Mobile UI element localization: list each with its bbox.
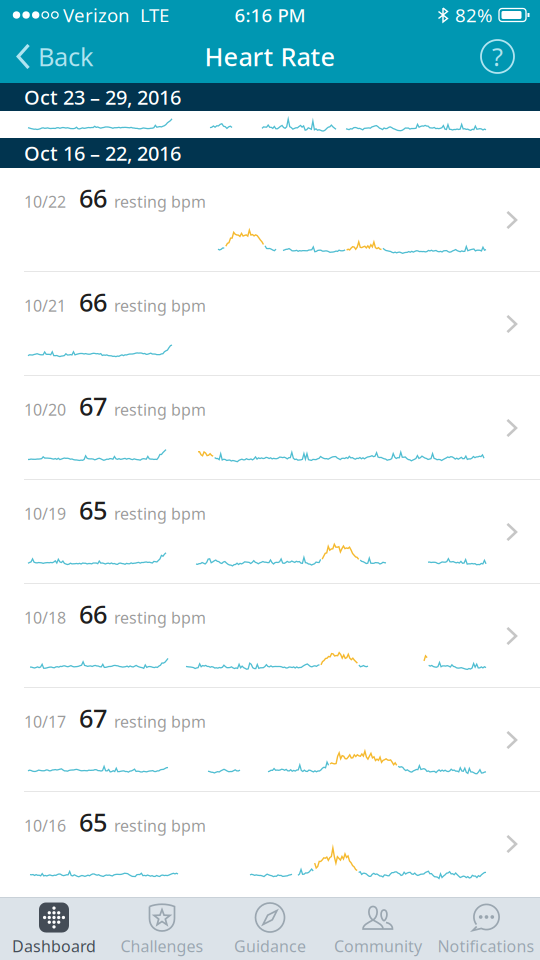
button[interactable]: 10/16 bbox=[0, 792, 540, 896]
staticText: 67 bbox=[79, 701, 107, 735]
staticText: Community bbox=[334, 935, 422, 957]
staticText: Oct 23 – 29, 2016 bbox=[24, 84, 181, 110]
staticText: resting bpm bbox=[114, 399, 206, 420]
staticText: resting bpm bbox=[114, 711, 206, 732]
staticText: 6:16 PM bbox=[234, 3, 305, 27]
button[interactable]: 10/18 bbox=[0, 584, 540, 688]
button[interactable]: 10/17 bbox=[0, 688, 540, 792]
staticText: 82% bbox=[455, 3, 493, 27]
button[interactable]: Back bbox=[0, 30, 104, 83]
staticText: 67 bbox=[79, 389, 107, 423]
button[interactable]: Guidance bbox=[216, 898, 324, 960]
staticText: resting bpm bbox=[114, 815, 206, 836]
staticText: resting bpm bbox=[114, 191, 206, 212]
button[interactable]: 10/19 bbox=[0, 480, 540, 584]
staticText: 65 bbox=[79, 493, 107, 527]
staticText: Oct 16 – 22, 2016 bbox=[24, 140, 181, 166]
staticText: Guidance bbox=[234, 935, 306, 957]
staticText: resting bpm bbox=[114, 503, 206, 524]
staticText: 65 bbox=[79, 805, 107, 839]
staticText: Verizon bbox=[63, 3, 130, 27]
button[interactable]: Dashboard bbox=[0, 898, 108, 960]
button[interactable]: Help bbox=[471, 30, 540, 83]
staticText: 66 bbox=[79, 597, 107, 631]
staticText: 10/22 bbox=[24, 191, 66, 212]
staticText: Notifications bbox=[437, 935, 534, 957]
staticText: 10/17 bbox=[24, 711, 66, 732]
button[interactable]: 10/20 bbox=[0, 376, 540, 480]
staticText: 10/16 bbox=[24, 815, 66, 836]
staticText: 66 bbox=[79, 285, 107, 319]
staticText: 10/20 bbox=[24, 399, 66, 420]
staticText: Heart Rate bbox=[204, 40, 335, 73]
staticText: Dashboard bbox=[12, 935, 96, 957]
staticText: resting bpm bbox=[114, 607, 206, 628]
staticText: 66 bbox=[79, 181, 107, 215]
staticText: LTE bbox=[140, 3, 169, 27]
staticText: Challenges bbox=[120, 935, 203, 957]
staticText: 10/21 bbox=[24, 295, 66, 316]
button[interactable]: 10/21 bbox=[0, 272, 540, 376]
button[interactable]: 10/22 bbox=[0, 168, 540, 272]
button[interactable]: Notifications bbox=[432, 898, 540, 960]
button[interactable]: Community bbox=[324, 898, 432, 960]
staticText: ? bbox=[492, 40, 503, 73]
staticText: 10/19 bbox=[24, 503, 66, 524]
button[interactable]: Challenges bbox=[108, 898, 216, 960]
staticText: 10/18 bbox=[24, 607, 66, 628]
staticText: Back bbox=[38, 40, 94, 73]
staticText: resting bpm bbox=[114, 295, 206, 316]
